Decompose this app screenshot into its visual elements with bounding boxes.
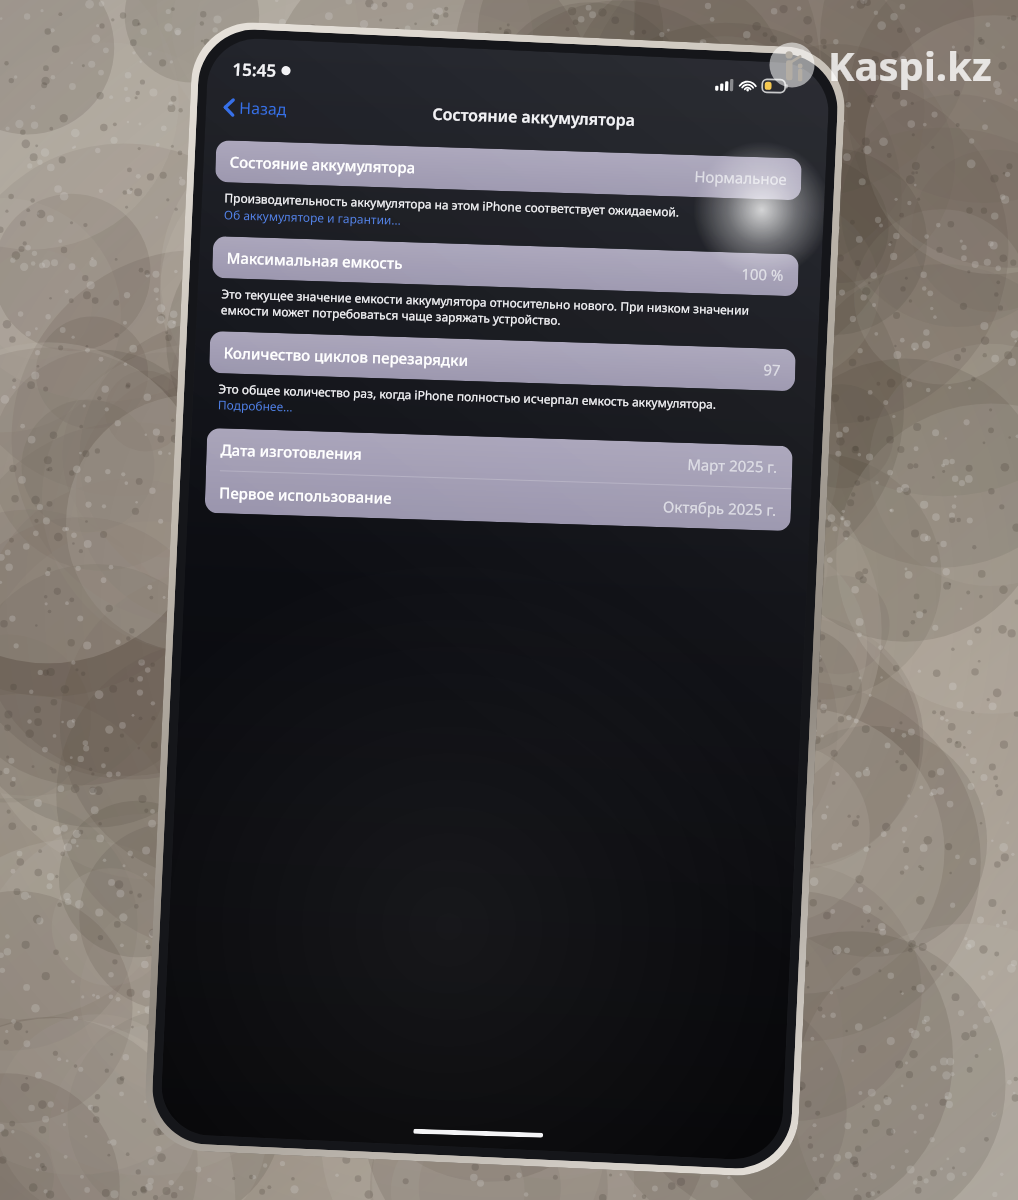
staticText: Производительность аккумулятора на этом …: [224, 183, 683, 226]
button[interactable]: Состояние аккумулятора: [214, 132, 803, 208]
button[interactable]: Подробнее…: [217, 395, 293, 416]
button[interactable]: Дата изготовления: [203, 420, 794, 539]
staticText: Количество циклов перезарядки: [223, 339, 469, 373]
staticText: Назад: [239, 96, 288, 121]
staticText: Март 2025 г.: [687, 453, 779, 478]
staticText: Это общее количество раз, когда iPhone п…: [218, 373, 720, 419]
staticText: Максимальная емкость: [226, 245, 404, 275]
staticText: 97: [763, 359, 782, 380]
staticText: Kaspi.kz: [828, 38, 992, 92]
staticText: Октябрь 2025 г.: [662, 495, 777, 521]
button[interactable]: Назад: [216, 91, 294, 125]
staticText: Состояние аккумулятора: [432, 100, 636, 134]
button[interactable]: Количество циклов перезарядки: [208, 323, 797, 399]
button[interactable]: Максимальная емкость: [211, 228, 800, 304]
staticText: Первое использование: [219, 480, 393, 510]
staticText: Нормальное: [694, 165, 788, 190]
staticText: Это текущее значение емкости аккумулятор…: [220, 277, 788, 343]
staticText: Дата изготовления: [220, 437, 363, 466]
staticText: 15:45: [232, 57, 277, 82]
button[interactable]: Об аккумуляторе и гарантии…: [223, 204, 402, 230]
staticText: 100 %: [741, 263, 785, 285]
other: Назад: [223, 98, 235, 117]
staticText: Состояние аккумулятора: [229, 149, 416, 180]
